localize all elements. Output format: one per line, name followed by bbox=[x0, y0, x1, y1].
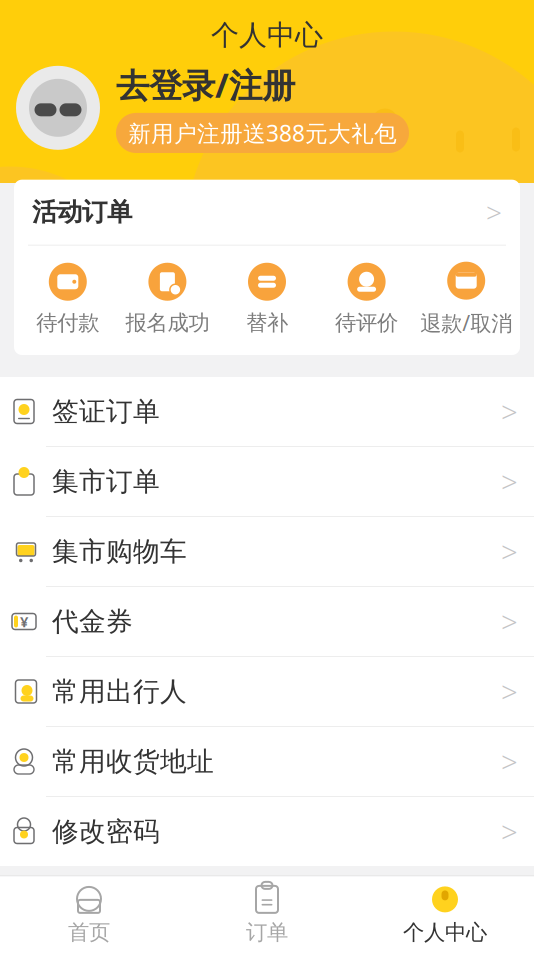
button[interactable]: 修改密码 bbox=[0, 797, 534, 866]
button[interactable]: ¥ bbox=[0, 587, 534, 657]
staticText: 首页 bbox=[68, 919, 110, 946]
staticText: 报名成功 bbox=[125, 310, 209, 336]
button[interactable]: 报名成功 bbox=[118, 263, 217, 336]
staticText: 个人中心 bbox=[211, 18, 323, 52]
staticText: > bbox=[501, 742, 518, 781]
staticText: > bbox=[501, 532, 518, 571]
button[interactable]: 活动订单 bbox=[14, 180, 520, 245]
staticText: 代金券 bbox=[52, 605, 133, 638]
button[interactable]: 常用收货地址 bbox=[0, 727, 534, 797]
staticText: 修改密码 bbox=[52, 815, 160, 848]
staticText: > bbox=[486, 194, 502, 231]
button[interactable]: 个人中心 bbox=[356, 876, 534, 956]
staticText: 个人中心 bbox=[403, 919, 487, 946]
staticText: 待付款 bbox=[36, 310, 99, 336]
staticText: 签证订单 bbox=[52, 395, 160, 428]
staticText: 常用出行人 bbox=[52, 675, 187, 708]
button[interactable]: 去登录/注册 bbox=[116, 63, 295, 107]
button[interactable]: 首页 bbox=[0, 876, 178, 956]
staticText: 待评价 bbox=[335, 310, 398, 336]
button[interactable]: 集市订单 bbox=[0, 447, 534, 517]
button[interactable]: 订单 bbox=[178, 876, 356, 956]
staticText: > bbox=[501, 812, 518, 851]
staticText: 新用户注册送388元大礼包 bbox=[128, 118, 397, 148]
staticText: 退款/取消 bbox=[420, 309, 512, 337]
button[interactable]: 签证订单 bbox=[0, 377, 534, 447]
staticText: > bbox=[501, 602, 518, 641]
staticText: > bbox=[501, 672, 518, 711]
staticText: 常用收货地址 bbox=[52, 745, 214, 778]
staticText: 替补 bbox=[246, 310, 288, 336]
staticText: > bbox=[501, 392, 518, 431]
staticText: 活动订单 bbox=[32, 197, 132, 228]
staticText: 去登录/注册 bbox=[116, 63, 295, 107]
button[interactable]: 集市购物车 bbox=[0, 517, 534, 587]
staticText: 集市订单 bbox=[52, 465, 160, 498]
staticText: > bbox=[501, 462, 518, 501]
button[interactable]: 常用出行人 bbox=[0, 657, 534, 727]
staticText: ¥ bbox=[20, 612, 28, 631]
staticText: 订单 bbox=[246, 919, 288, 946]
button[interactable]: 退款/取消 bbox=[416, 262, 516, 337]
button[interactable]: 替补 bbox=[217, 263, 317, 336]
staticText: 集市购物车 bbox=[52, 535, 187, 568]
button[interactable]: 待付款 bbox=[18, 263, 118, 336]
button[interactable]: 待评价 bbox=[317, 263, 416, 336]
